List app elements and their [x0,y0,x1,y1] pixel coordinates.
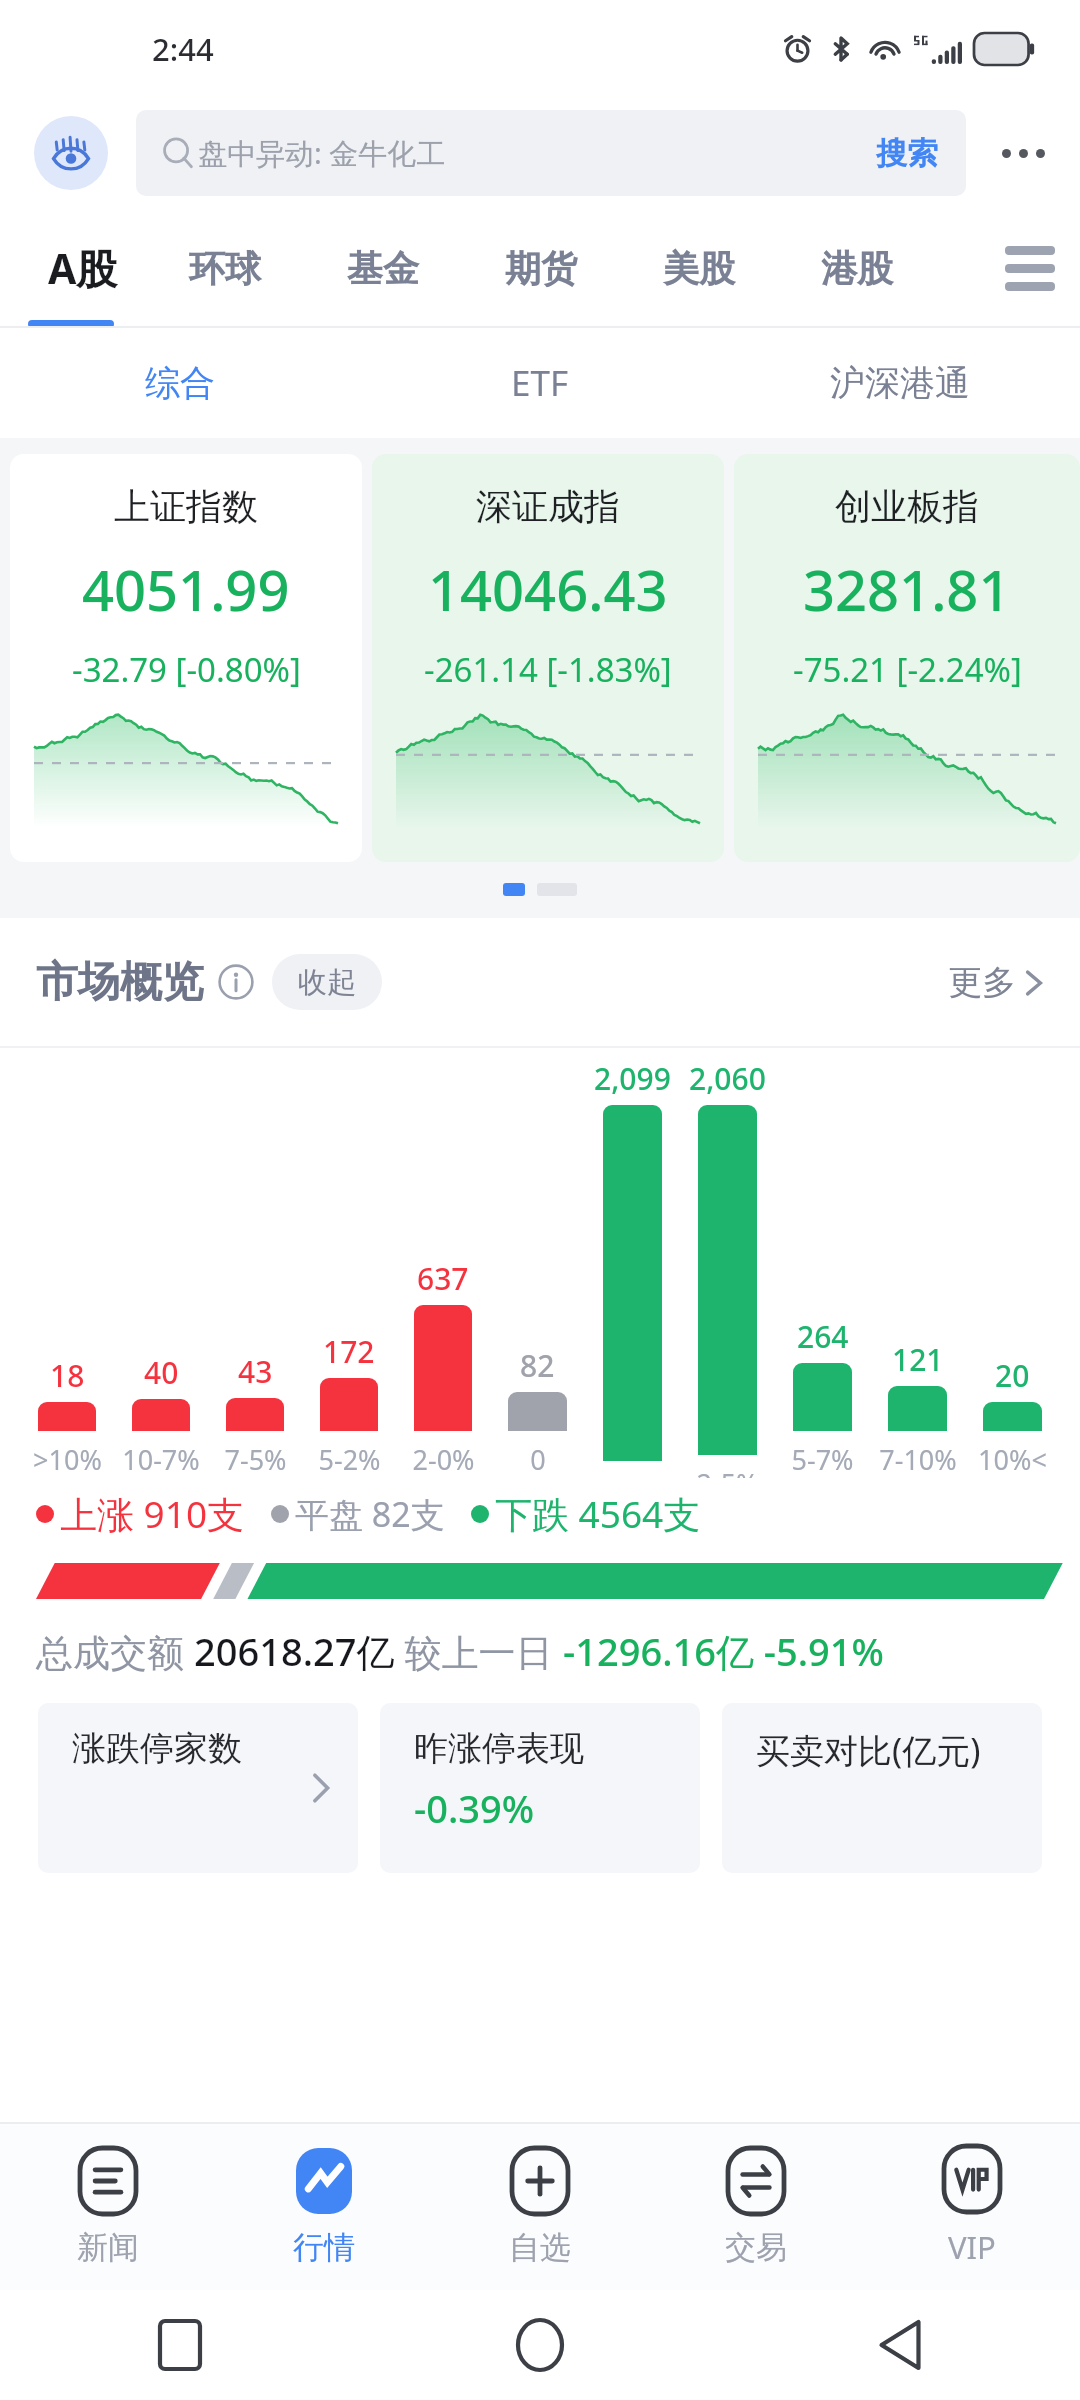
staticText: -0.39% [414,1782,535,1834]
staticText: 涨跌停家数 [72,1727,242,1770]
staticText: 综合 [145,361,215,405]
staticText: ETF [511,359,569,407]
button[interactable]: 环球 [146,208,304,328]
button[interactable]: 新闻 [0,2124,216,2290]
staticText: 基金 [347,246,419,291]
button[interactable]: Menu [980,208,1080,328]
staticText: -261.14 [-1.83%] [424,647,672,692]
staticText: >10% [33,1441,102,1478]
staticText: 5-2% [318,1441,381,1478]
staticText: 买卖对比(亿元) [756,1727,981,1773]
button[interactable]: 收起 [272,954,382,1010]
button[interactable]: 行情 [216,2124,432,2290]
staticText: 深证成指 [476,484,620,529]
staticText: 2,099 [594,1058,671,1099]
staticText: 172 [323,1331,375,1372]
staticText: 121 [892,1339,944,1380]
button[interactable]: 涨跌停家数 [38,1703,358,1873]
staticText: 更多 [948,961,1016,1004]
staticText: 新闻 [77,2228,139,2267]
button[interactable]: 上证指数 [10,454,362,862]
button[interactable]: ETF [360,328,720,438]
staticText: 总成交额 [36,1626,194,1677]
button[interactable]: 深证成指 [372,454,724,862]
staticText: 收起 [298,964,356,1001]
staticText: 7-5% [224,1441,287,1478]
staticText: 下跌 4564支 [495,1488,701,1539]
staticText: 18 [50,1355,85,1396]
button[interactable]: 昨涨停表现 [380,1703,700,1873]
staticText: 美股 [663,246,735,291]
staticText: 43 [238,1351,273,1392]
button[interactable]: Info [218,964,254,1000]
button[interactable]: 上涨 910支 [36,1488,245,1539]
button[interactable]: 期货 [462,208,620,328]
staticText: 20 [995,1355,1030,1396]
button[interactable]: A股 [20,208,146,328]
staticText: 沪深港通 [830,361,970,405]
staticText: 7-10% [879,1441,957,1478]
button[interactable]: 盘中异动: 金牛化工 [136,110,966,196]
button[interactable]: Weibo [34,116,108,190]
button[interactable]: More options [988,118,1058,188]
staticText: 0 [530,1441,546,1478]
staticText: 较上一日 [395,1626,563,1677]
button[interactable]: 美股 [620,208,778,328]
staticText: 637 [417,1258,469,1299]
staticText: A股 [48,240,118,296]
button[interactable]: 基金 [304,208,462,328]
staticText: 2-5% [696,1465,759,1478]
staticText: 5-7% [791,1441,854,1478]
button[interactable]: 自选 [432,2124,648,2290]
staticText: 40 [144,1352,179,1393]
staticText: 环球 [189,246,261,291]
staticText: 上涨 910支 [60,1488,245,1539]
staticText: -1296.16亿 -5.91% [563,1625,884,1677]
staticText: 82 [520,1345,555,1386]
staticText: 上证指数 [114,484,258,529]
staticText: 3281.81 [803,551,1011,627]
staticText: 10-7% [122,1441,200,1478]
staticText: 市场概览 [36,956,204,1009]
staticText: 20618.27亿 [194,1625,395,1677]
button[interactable]: 买卖对比(亿元) [722,1703,1042,1873]
staticText: 交易 [725,2228,787,2267]
staticText: VIP [948,2226,996,2268]
staticText: 2:44 [152,28,214,70]
button[interactable]: 沪深港通 [720,328,1080,438]
staticText: -32.79 [-0.80%] [72,647,301,692]
staticText: 自选 [509,2228,571,2267]
button[interactable]: 下跌 4564支 [471,1488,701,1539]
staticText: -75.21 [-2.24%] [793,647,1022,692]
staticText: 港股 [821,246,893,291]
staticText: 14046.43 [428,551,668,627]
staticText: 2-0% [412,1441,475,1478]
staticText: 4051.99 [82,551,290,627]
button[interactable]: VIP [864,2124,1080,2290]
button[interactable]: Home [360,2290,720,2400]
staticText: 行情 [293,2228,355,2267]
staticText: 平盘 82支 [295,1491,445,1537]
button[interactable]: 更多 [948,961,1044,1004]
button[interactable]: 平盘 82支 [271,1491,445,1537]
staticText: 搜索 [876,134,938,173]
staticText: 昨涨停表现 [414,1727,584,1770]
staticText: 10%< [978,1441,1047,1478]
button[interactable]: Back [720,2290,1080,2400]
button[interactable]: Recents [0,2290,360,2400]
staticText: 264 [797,1316,849,1357]
staticText: 2,060 [689,1058,766,1099]
button[interactable]: 港股 [778,208,936,328]
staticText: 创业板指 [835,484,979,529]
button[interactable]: 创业板指 [734,454,1080,862]
button[interactable]: 综合 [0,328,360,438]
staticText: 期货 [505,246,577,291]
staticText: 盘中异动: 金牛化工 [198,133,446,173]
button[interactable]: 交易 [648,2124,864,2290]
